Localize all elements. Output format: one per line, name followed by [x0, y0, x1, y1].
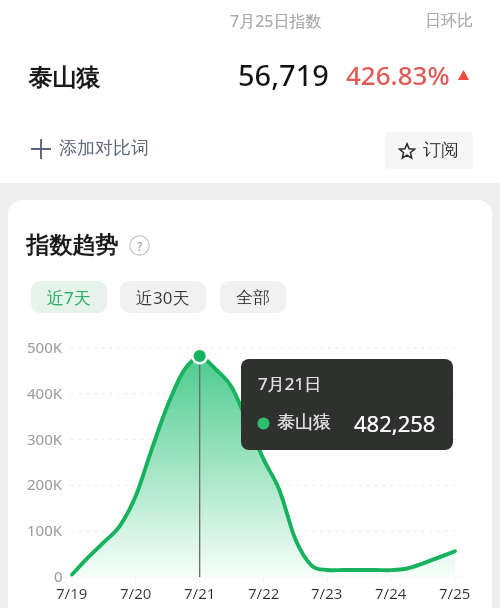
staticText: 7/23 [311, 583, 343, 603]
staticText: 7/20 [120, 583, 152, 603]
staticText: 全部 [236, 287, 270, 308]
staticText: 482,258 [354, 408, 436, 438]
staticText: 500K [27, 337, 63, 357]
button[interactable]: 近30天 [120, 281, 206, 313]
staticText: ? [137, 238, 143, 254]
staticText: 100K [27, 520, 63, 540]
staticText: 56,719 [238, 55, 329, 94]
staticText: 0 [54, 566, 63, 586]
staticText: 300K [27, 429, 63, 449]
staticText: 近30天 [136, 286, 190, 309]
staticText: 泰山猿 [28, 63, 100, 93]
staticText: 添加对比词 [59, 137, 149, 160]
button[interactable]: 全部 [220, 281, 286, 313]
button[interactable]: 说明 [129, 235, 150, 256]
staticText: 7月21日 [258, 372, 322, 395]
staticText: 7/24 [375, 583, 407, 603]
staticText: 7/21 [184, 583, 216, 603]
staticText: 426.83% [346, 57, 450, 92]
staticText: 400K [27, 383, 63, 403]
staticText: 订阅 [423, 139, 459, 162]
staticText: 7/25 [439, 583, 471, 603]
button[interactable]: 添加对比词 [27, 131, 153, 166]
staticText: 7/22 [248, 583, 280, 603]
staticText: 200K [27, 474, 63, 494]
staticText: 指数趋势 [26, 231, 118, 260]
staticText: 泰山猿 [277, 411, 331, 434]
staticText: 7/19 [56, 583, 88, 603]
button[interactable]: 近7天 [31, 281, 107, 313]
staticText: 日环比 [425, 11, 473, 31]
staticText: 近7天 [47, 286, 91, 309]
button[interactable]: 订阅 [385, 132, 473, 169]
staticText: 7月25日指数 [230, 10, 322, 32]
